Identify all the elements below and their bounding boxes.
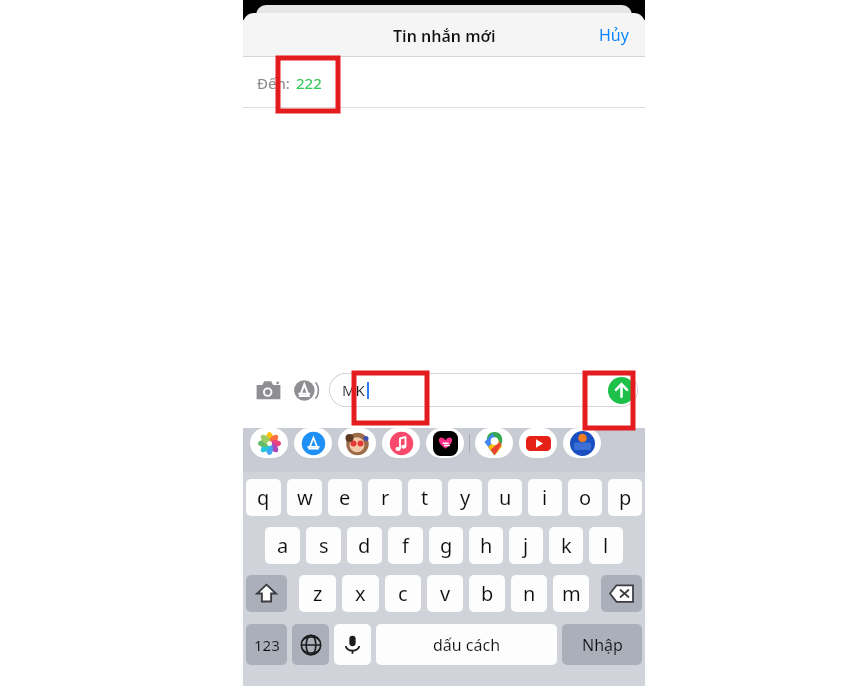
button[interactable]: Hủy: [583, 15, 645, 55]
staticText: x: [355, 580, 366, 607]
staticText: MK: [342, 380, 365, 400]
button[interactable]: j: [509, 527, 543, 564]
button[interactable]: b: [469, 575, 505, 612]
staticText: d: [358, 532, 371, 559]
button[interactable]: s: [306, 527, 341, 564]
button[interactable]: Camera: [251, 373, 285, 407]
staticText: Đến:: [257, 73, 290, 93]
button[interactable]: r: [368, 479, 402, 516]
staticText: t: [421, 484, 429, 511]
button[interactable]: v: [427, 575, 463, 612]
button[interactable]: c: [385, 575, 421, 612]
staticText: n: [523, 580, 536, 607]
staticText: u: [499, 484, 512, 511]
button[interactable]: h: [469, 527, 503, 564]
staticText: l: [603, 532, 609, 559]
button[interactable]: Send: [608, 377, 635, 404]
staticText: dấu cách: [433, 634, 501, 656]
button[interactable]: 123: [246, 624, 287, 665]
staticText: Tin nhắn mới: [393, 25, 496, 47]
staticText: a: [277, 532, 289, 559]
staticText: e: [339, 484, 351, 511]
button[interactable]: Dictation: [334, 624, 371, 665]
staticText: s: [319, 532, 329, 559]
button[interactable]: Fitness: [426, 428, 464, 458]
button[interactable]: MK: [329, 373, 638, 407]
button[interactable]: y: [448, 479, 482, 516]
button[interactable]: Memoji: [338, 428, 376, 458]
staticText: r: [381, 484, 390, 511]
staticText: j: [523, 532, 529, 559]
button[interactable]: p: [608, 479, 642, 516]
button[interactable]: Đến:: [243, 57, 645, 108]
button[interactable]: App Store: [294, 428, 332, 458]
staticText: w: [297, 484, 313, 511]
staticText: y: [460, 484, 471, 511]
button[interactable]: m: [553, 575, 589, 612]
staticText: g: [440, 532, 453, 559]
button[interactable]: App Store: [289, 373, 323, 407]
button[interactable]: Nhập: [562, 624, 642, 665]
staticText: h: [480, 532, 493, 559]
staticText: 123: [254, 635, 280, 655]
staticText: Nhập: [582, 634, 623, 656]
staticText: o: [579, 484, 592, 511]
button[interactable]: Maps: [475, 428, 513, 458]
button[interactable]: YouTube: [519, 428, 557, 458]
staticText: Hủy: [599, 24, 629, 46]
staticText: k: [561, 532, 572, 559]
button[interactable]: d: [347, 527, 382, 564]
button[interactable]: t: [408, 479, 442, 516]
staticText: m: [562, 580, 581, 607]
button[interactable]: k: [549, 527, 583, 564]
button[interactable]: i: [528, 479, 562, 516]
staticText: z: [313, 580, 323, 607]
button[interactable]: o: [568, 479, 602, 516]
staticText: p: [619, 484, 632, 511]
button[interactable]: Photos: [250, 428, 288, 458]
button[interactable]: Music: [382, 428, 420, 458]
button[interactable]: g: [429, 527, 463, 564]
staticText: b: [481, 580, 494, 607]
button[interactable]: u: [488, 479, 522, 516]
button[interactable]: dấu cách: [376, 624, 557, 665]
staticText: 222: [296, 73, 322, 93]
button[interactable]: n: [511, 575, 547, 612]
button[interactable]: z: [299, 575, 336, 612]
button[interactable]: q: [246, 479, 281, 516]
button[interactable]: l: [589, 527, 623, 564]
staticText: f: [402, 532, 409, 559]
button[interactable]: Shift: [246, 575, 287, 612]
staticText: i: [542, 484, 548, 511]
staticText: v: [440, 580, 451, 607]
staticText: q: [257, 484, 270, 511]
staticText: c: [398, 580, 408, 607]
button[interactable]: f: [388, 527, 423, 564]
button[interactable]: Change keyboard: [292, 624, 329, 665]
button[interactable]: w: [287, 479, 322, 516]
button[interactable]: Lazada: [563, 428, 601, 458]
button[interactable]: a: [265, 527, 300, 564]
button[interactable]: x: [342, 575, 379, 612]
button[interactable]: Backspace: [601, 575, 642, 612]
button[interactable]: e: [328, 479, 362, 516]
